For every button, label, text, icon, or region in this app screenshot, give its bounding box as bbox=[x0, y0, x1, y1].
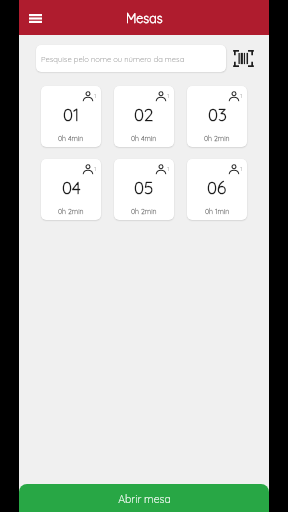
staticText: 03 bbox=[208, 104, 227, 125]
staticText: 0h 2min bbox=[131, 207, 157, 216]
button[interactable]: 1 bbox=[114, 86, 174, 147]
staticText: 0h 2min bbox=[204, 134, 230, 143]
button[interactable]: Scan barcode bbox=[230, 45, 257, 72]
staticText: 1 bbox=[94, 164, 97, 172]
staticText: Mesas bbox=[126, 10, 163, 26]
button[interactable]: 1 bbox=[114, 159, 174, 220]
staticText: 04 bbox=[62, 177, 81, 198]
staticText: 1 bbox=[167, 164, 170, 172]
button[interactable]: 1 bbox=[41, 86, 101, 147]
staticText: Abrir mesa bbox=[118, 492, 171, 505]
staticText: 02 bbox=[134, 104, 154, 125]
button[interactable]: 1 bbox=[187, 86, 247, 147]
staticText: 0h 2min bbox=[58, 207, 84, 216]
staticText: 1 bbox=[94, 91, 97, 99]
staticText: 1 bbox=[167, 91, 170, 99]
staticText: 01 bbox=[63, 104, 80, 125]
staticText: Pesquise pelo nome ou número da mesa bbox=[41, 54, 185, 64]
button[interactable]: 1 bbox=[187, 159, 247, 220]
staticText: 1 bbox=[240, 164, 243, 172]
staticText: 0h 1min bbox=[205, 207, 230, 216]
button[interactable]: Menu bbox=[20, 3, 50, 33]
staticText: 0h 4min bbox=[58, 134, 84, 143]
button[interactable]: 1 bbox=[41, 159, 101, 220]
staticText: 0h 4min bbox=[131, 134, 157, 143]
staticText: 05 bbox=[134, 177, 154, 198]
staticText: 1 bbox=[240, 91, 243, 99]
button[interactable]: Pesquise pelo nome ou número da mesa bbox=[36, 45, 226, 72]
button[interactable]: Abrir mesa bbox=[19, 484, 269, 512]
staticText: 06 bbox=[207, 177, 227, 198]
